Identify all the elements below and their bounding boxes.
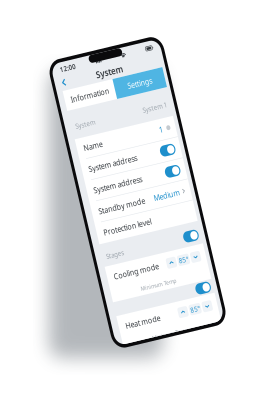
button[interactable]: Settings — [81, 36, 150, 59]
button[interactable]: Standby mode — [13, 165, 149, 189]
staticText: Heat mode — [22, 303, 70, 315]
staticText: Name — [22, 98, 48, 110]
button[interactable]: Name — [13, 92, 149, 116]
button[interactable]: System address — [13, 116, 149, 140]
button[interactable]: Stages enabled — [125, 222, 146, 235]
staticText: Cooling mode — [22, 246, 84, 258]
button[interactable]: Heat stage enabled — [125, 282, 146, 295]
button[interactable]: Increase — [95, 246, 108, 258]
staticText: Settings — [98, 41, 132, 54]
staticText: Medium — [98, 171, 134, 183]
staticText: 85° — [112, 247, 125, 258]
staticText: Minimum Temp — [53, 268, 102, 277]
button[interactable]: 85° — [110, 246, 126, 258]
staticText: Protection level — [22, 195, 88, 208]
button[interactable]: Decrease — [128, 303, 142, 315]
staticText: Minimum Temp — [53, 325, 102, 334]
button[interactable]: Increase — [95, 303, 108, 315]
staticText: Stages — [18, 223, 43, 234]
button[interactable]: System address — [13, 141, 149, 164]
staticText: Standby mode — [22, 171, 86, 183]
staticText: System address — [22, 122, 89, 134]
staticText: System address — [22, 146, 89, 159]
button[interactable]: Information — [12, 36, 81, 59]
staticText: System 1 — [111, 73, 145, 83]
staticText: System — [18, 73, 45, 83]
button[interactable]: Protection level — [13, 190, 149, 213]
